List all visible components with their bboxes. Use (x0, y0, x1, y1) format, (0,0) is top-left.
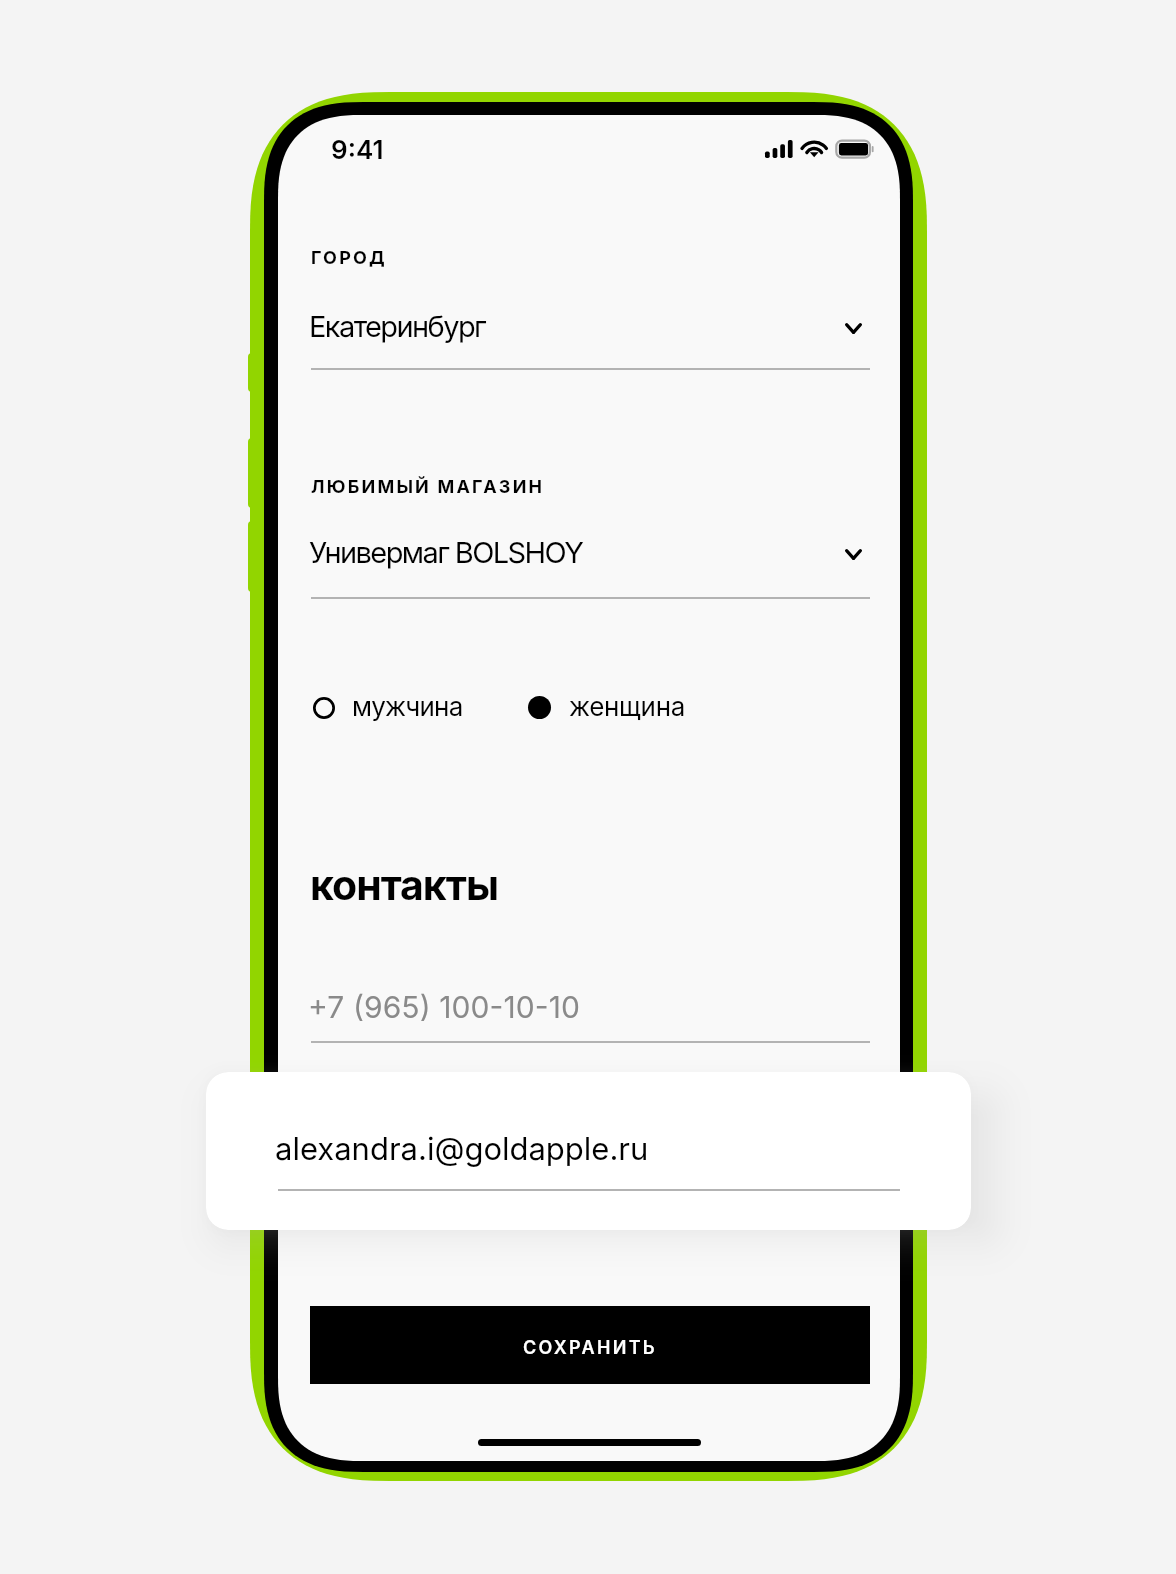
staticText: СОХРАНИТЬ (523, 1337, 657, 1359)
staticText: ЛЮБИМЫЙ МАГАЗИН (311, 476, 545, 498)
button[interactable]: мужчина (311, 691, 466, 724)
staticText: мужчина (352, 691, 463, 722)
button[interactable]: Open store selector (828, 529, 878, 579)
staticText: женщина (569, 691, 686, 722)
button[interactable]: женщина (527, 691, 690, 724)
staticText: ГОРОД (311, 247, 387, 269)
staticText: alexandra.i@goldapple.ru (275, 1130, 649, 1168)
staticText: 9:41 (331, 134, 384, 165)
staticText: Универмаг BOLSHOY (309, 535, 583, 570)
button[interactable]: СОХРАНИТЬ (310, 1306, 870, 1384)
button[interactable]: Open city selector (828, 303, 878, 353)
staticText: +7 (965) 100-10-10 (308, 989, 581, 1025)
button[interactable]: alexandra.i@goldapple.ru (206, 1072, 971, 1230)
staticText: Екатеринбург (309, 309, 486, 344)
staticText: контакты (310, 860, 499, 910)
